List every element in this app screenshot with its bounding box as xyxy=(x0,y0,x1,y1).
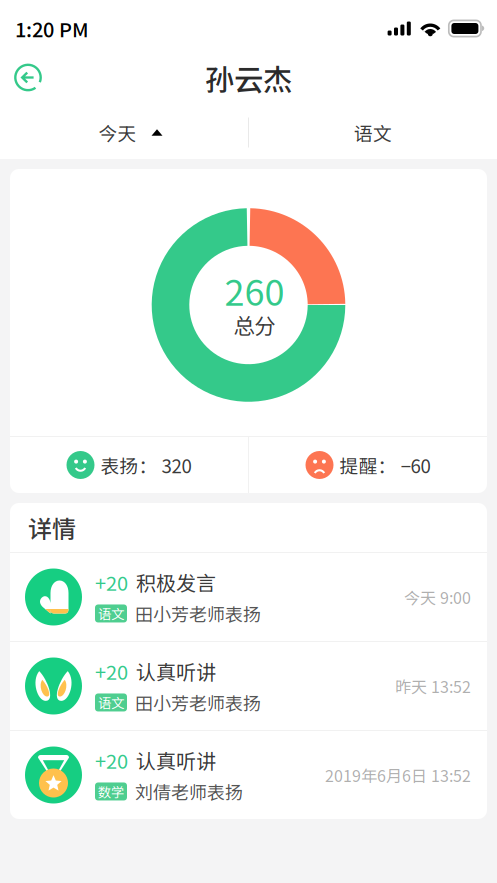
staticText: 田小芳老师表扬 xyxy=(135,689,261,715)
staticText: 今天 9:00 xyxy=(404,585,471,609)
staticText: 认真听讲 xyxy=(136,745,216,774)
staticText: 孙云杰 xyxy=(205,57,292,99)
button[interactable]: 提醒： −60 xyxy=(249,437,487,493)
button[interactable]: 语文 xyxy=(249,106,497,159)
staticText: +20 xyxy=(95,745,128,774)
staticText: 积极发言 xyxy=(136,567,216,596)
staticText: 总分 xyxy=(233,309,275,340)
staticText: 刘倩老师表扬 xyxy=(135,778,243,804)
staticText: 田小芳老师表扬 xyxy=(135,600,261,626)
staticText: 2019年6月6日 13:52 xyxy=(325,763,471,787)
button[interactable]: +20 xyxy=(10,642,487,730)
staticText: 260 xyxy=(224,264,284,316)
staticText: 今天 xyxy=(98,119,136,146)
staticText: 数学 xyxy=(98,782,124,801)
staticText: 昨天 13:52 xyxy=(395,674,471,698)
staticText: +20 xyxy=(95,567,128,596)
staticText: +20 xyxy=(95,656,128,685)
staticText: 认真听讲 xyxy=(136,656,216,685)
staticText: 语文 xyxy=(354,119,392,146)
button[interactable]: 表扬： 320 xyxy=(10,437,248,493)
button[interactable]: +20 xyxy=(10,731,487,819)
staticText: 语文 xyxy=(98,604,124,623)
staticText: 语文 xyxy=(98,693,124,712)
button[interactable]: +20 xyxy=(10,553,487,641)
staticText: 表扬： 320 xyxy=(100,451,191,478)
button[interactable]: Back xyxy=(5,54,51,105)
button[interactable]: 今天 xyxy=(0,106,248,159)
staticText: 详情 xyxy=(28,510,76,545)
staticText: 1:20 PM xyxy=(15,14,89,43)
staticText: 提醒： −60 xyxy=(339,451,430,478)
